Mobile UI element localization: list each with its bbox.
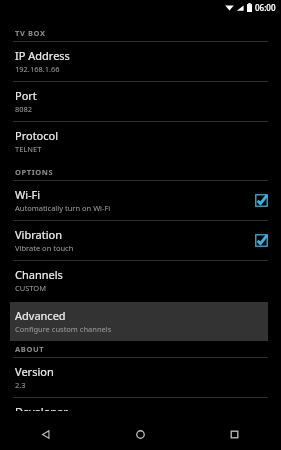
staticText: Advanced [15,308,66,323]
staticText: OPTIONS [15,167,54,177]
button[interactable]: Protocol [0,122,281,161]
staticText: Developer [15,404,68,411]
button[interactable]: Back [0,418,93,450]
staticText: CUSTOM [15,283,47,293]
button[interactable]: Home [93,418,187,450]
button[interactable]: Vibration [0,221,281,260]
staticText: TV BOX [15,28,46,38]
staticText: Wi-Fi [15,187,41,202]
staticText: Port [15,88,37,103]
button[interactable]: Advanced [10,302,268,341]
staticText: TELNET [15,144,42,154]
button[interactable]: Wi-Fi [0,181,281,220]
staticText: Channels [15,267,63,282]
staticText: 192.168.1.66 [15,64,60,74]
staticText: IP Address [15,48,70,63]
staticText: ABOUT [15,344,45,354]
staticText: Automatically turn on Wi-Fi [15,203,111,213]
button[interactable]: Recent apps [187,418,281,450]
staticText: 06:00 [255,2,276,13]
button[interactable]: Channels [0,261,281,300]
staticText: Configure custom channels [15,324,112,334]
staticText: 8082 [15,104,33,114]
staticText: Version [15,364,54,379]
staticText: Vibration [15,227,62,242]
button[interactable]: Version [0,358,281,397]
staticText: Protocol [15,128,59,143]
staticText: Vibrate on touch [15,243,74,253]
button[interactable]: Port [0,82,281,121]
button[interactable]: IP Address [0,42,281,81]
button[interactable]: Developer [0,398,281,418]
staticText: 2.3 [15,380,26,390]
